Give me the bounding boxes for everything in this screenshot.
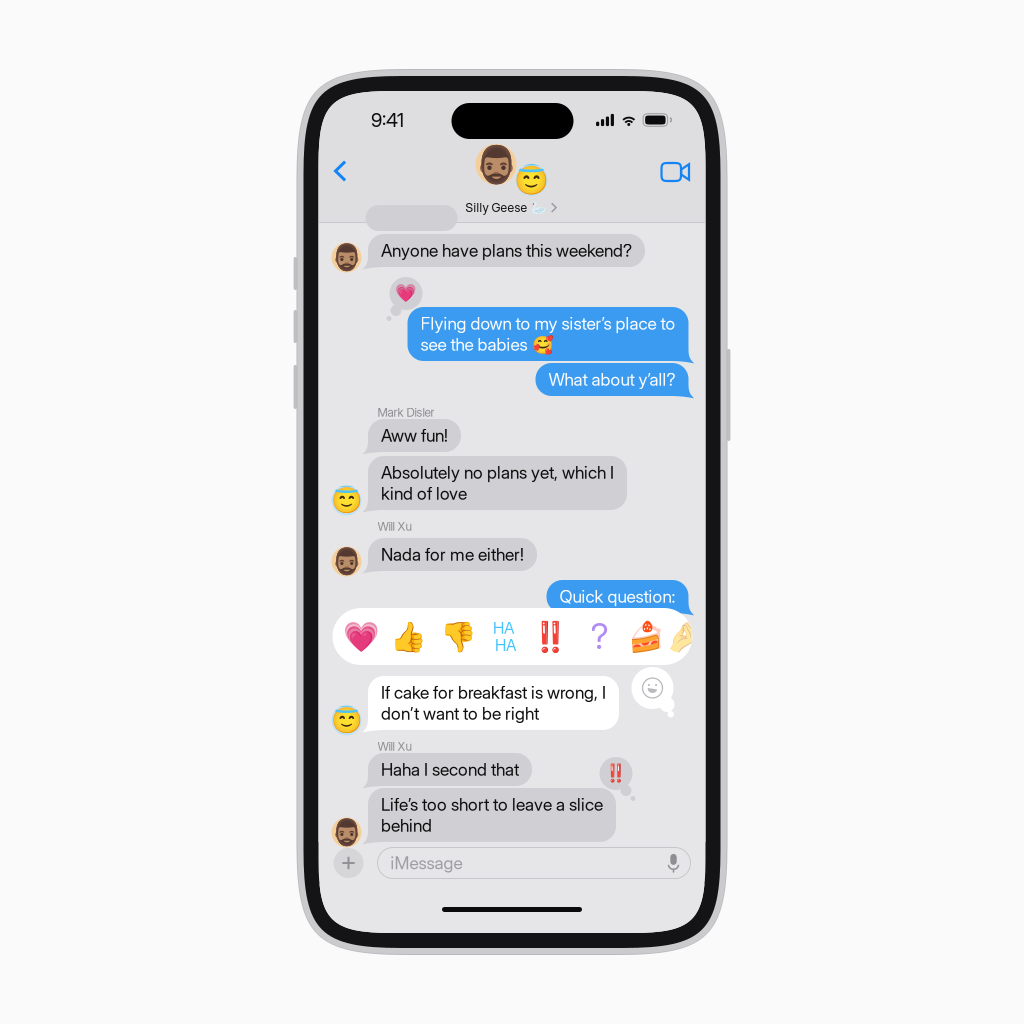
button[interactable]: Haha reaction: [332, 608, 366, 642]
button[interactable]: Question reaction: [332, 608, 366, 642]
button[interactable]: Cake sticker: [332, 608, 366, 642]
staticText: 🍰: [628, 620, 665, 653]
button[interactable]: Back: [333, 151, 367, 191]
button[interactable]: FaceTime: [661, 152, 705, 192]
staticText: 😇: [330, 486, 362, 515]
button[interactable]: Love reaction: [332, 608, 366, 642]
staticText: ?: [590, 615, 608, 657]
button[interactable]: iMessage text field: [377, 847, 690, 878]
staticText: ‼️: [532, 620, 569, 653]
staticText: 😇: [330, 706, 362, 735]
staticText: 🧔🏽‍♂️: [330, 243, 362, 272]
staticText: iMessage: [390, 852, 462, 873]
staticText: Flying down to my sister’s place to see …: [420, 313, 675, 355]
staticText: 💗: [395, 284, 417, 303]
staticText: Nada for me either!: [381, 544, 524, 565]
button[interactable]: Exclamation reaction: [332, 608, 366, 642]
button[interactable]: Thumbs down reaction: [332, 608, 366, 642]
staticText: 👎: [440, 620, 477, 653]
staticText: 🧔🏽‍♂️: [330, 818, 362, 847]
staticText: Mark Disler: [377, 405, 434, 419]
button[interactable]: Add attachment: [333, 848, 363, 878]
staticText: 🤌: [665, 620, 702, 653]
staticText: Life’s too short to leave a slice behind: [381, 794, 603, 836]
staticText: 9:41: [371, 108, 404, 132]
staticText: Silly Geese 🦢: [465, 200, 545, 215]
staticText: ‼️: [605, 764, 627, 783]
staticText: Will Xu: [377, 739, 412, 753]
staticText: 😇: [514, 164, 549, 196]
staticText: If cake for breakfast is wrong, I don’t …: [381, 682, 606, 724]
staticText: HA: [495, 635, 516, 655]
button[interactable]: Thumbs up reaction: [332, 608, 366, 642]
staticText: 👍: [390, 620, 427, 653]
staticText: Aww fun!: [381, 425, 448, 446]
button[interactable]: Silly Geese, group details: [421, 144, 601, 214]
staticText: 🧔🏽‍♂️: [330, 547, 362, 576]
staticText: Quick question:: [559, 586, 675, 607]
staticText: Anyone have plans this weekend?: [381, 240, 632, 261]
staticText: HA: [493, 618, 514, 637]
staticText: 💗: [343, 620, 380, 653]
staticText: Will Xu: [377, 519, 412, 533]
staticText: Absolutely no plans yet, which I kind of…: [381, 462, 614, 504]
staticText: What about y’all?: [548, 369, 675, 390]
staticText: 🧔🏽‍♂️: [473, 144, 518, 185]
staticText: Haha I second that: [381, 759, 519, 780]
